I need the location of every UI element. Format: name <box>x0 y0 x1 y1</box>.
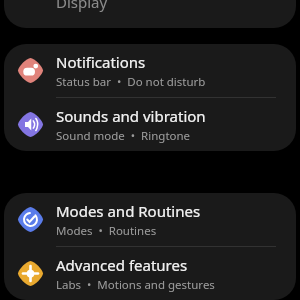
other: Sounds and vibration <box>18 112 43 137</box>
staticText: Advanced features <box>56 255 188 275</box>
other: Advanced features <box>18 261 43 286</box>
staticText: Modes • Routines <box>56 223 157 239</box>
other: Modes and Routines <box>18 207 43 232</box>
staticText: Sound mode • Ringtone <box>56 128 191 144</box>
button[interactable]: Notifications <box>4 44 296 97</box>
staticText: Notifications <box>56 52 146 72</box>
button[interactable]: Modes and Routines <box>4 193 296 246</box>
staticText: Labs • Motions and gestures <box>56 277 215 293</box>
staticText: Sounds and vibration <box>56 106 206 126</box>
other: Notifications <box>18 58 43 83</box>
button[interactable]: Advanced features <box>4 247 296 300</box>
button[interactable]: Sounds and vibration <box>4 98 296 151</box>
staticText: Status bar • Do not disturb <box>56 74 206 90</box>
staticText: Modes and Routines <box>56 201 201 221</box>
staticText: Display <box>56 0 108 12</box>
button[interactable]: Display <box>4 0 296 28</box>
